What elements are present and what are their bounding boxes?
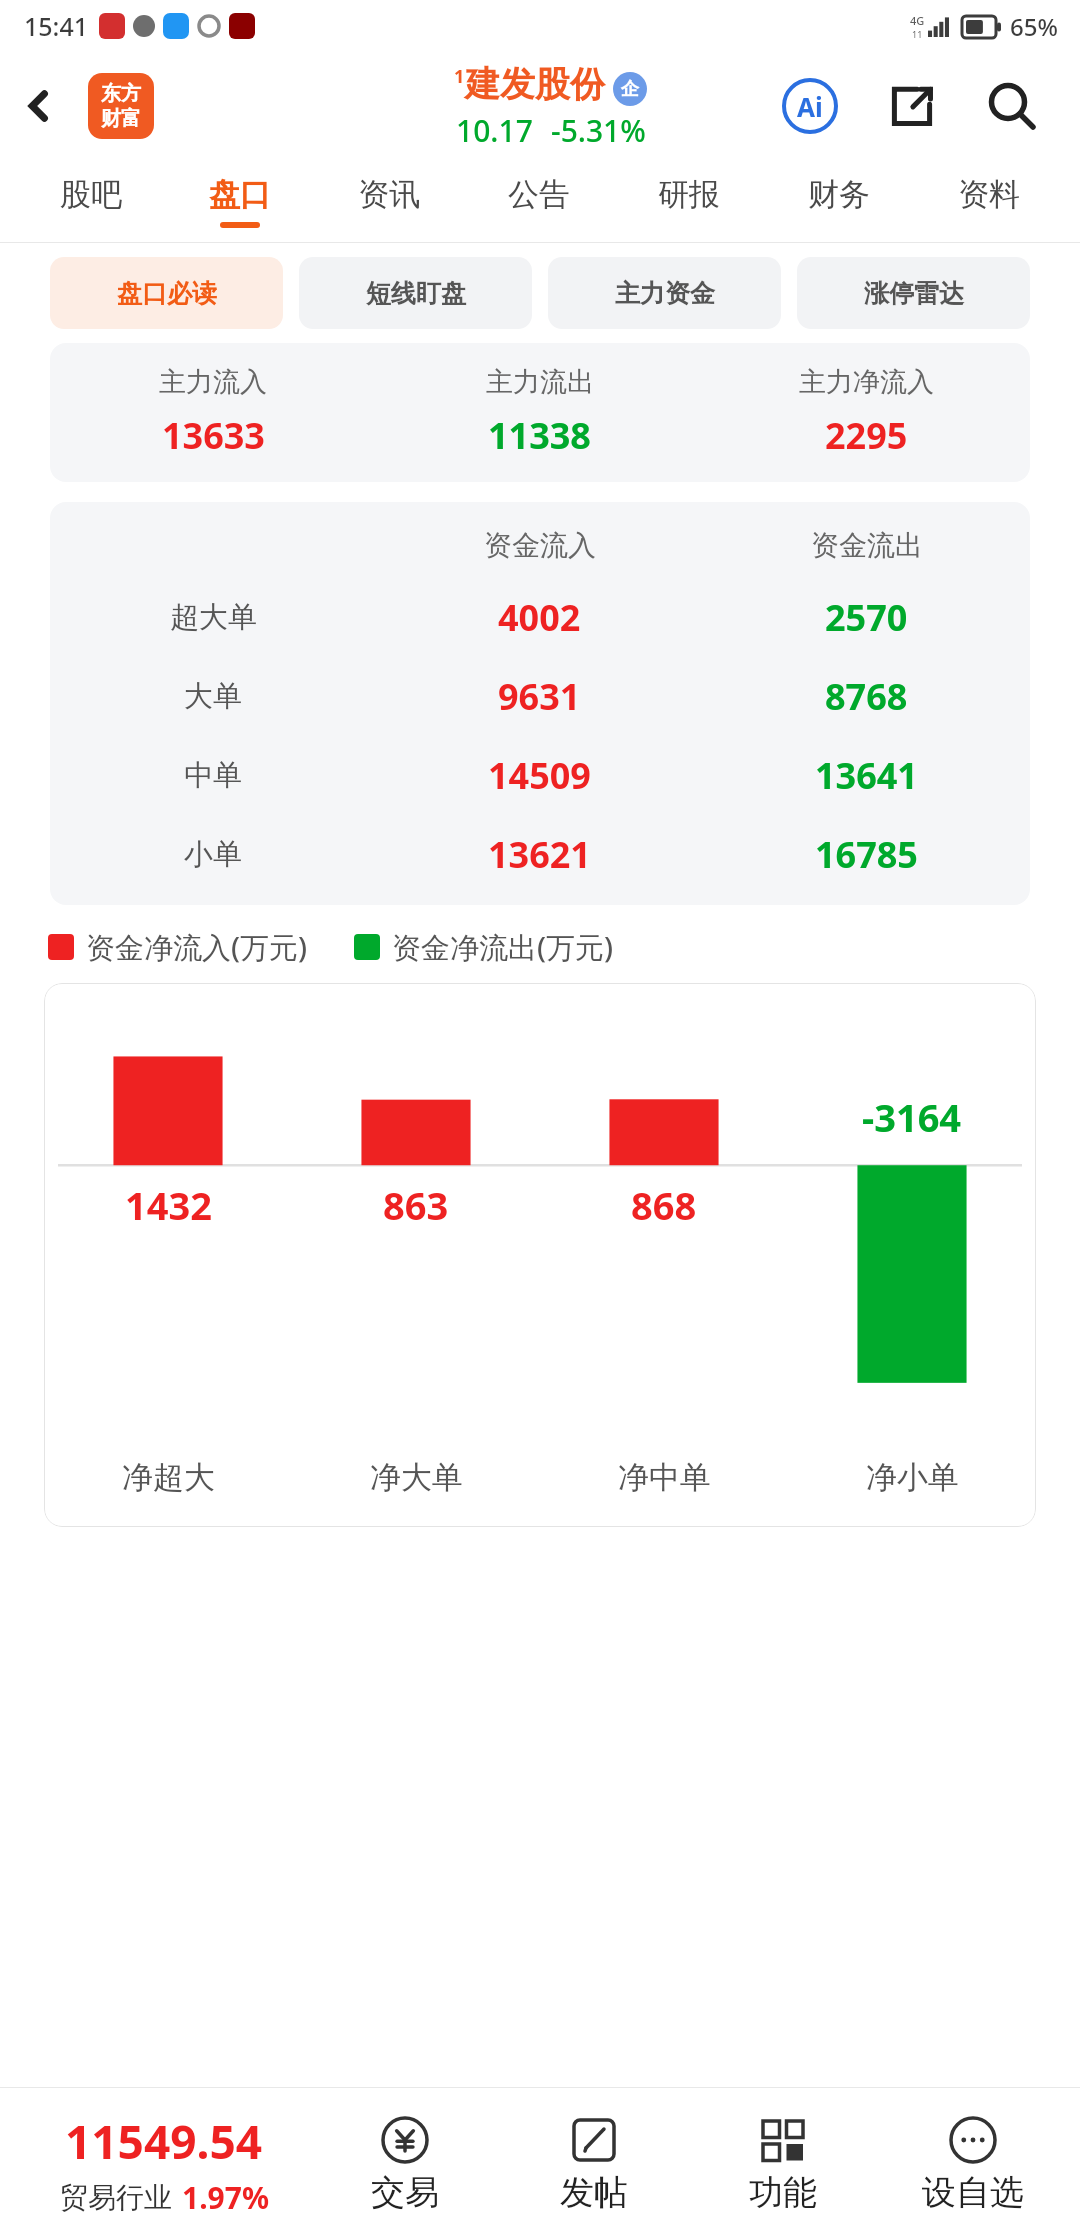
- button[interactable]: 资料: [914, 160, 1064, 242]
- staticText: 贸易行业: [60, 2180, 172, 2215]
- button[interactable]: 主力资金: [548, 257, 781, 329]
- button[interactable]: 设自选: [878, 2088, 1068, 2240]
- staticText: -3164: [862, 1091, 962, 1143]
- button[interactable]: 公告: [464, 160, 614, 242]
- staticText: 净超大: [122, 1458, 215, 1497]
- staticText: 股吧: [60, 175, 122, 214]
- button[interactable]: 大单: [50, 672, 1030, 721]
- staticText: 短线盯盘: [366, 278, 466, 309]
- staticText: 小单: [184, 836, 242, 873]
- staticText: 财务: [808, 175, 870, 214]
- staticText: 公告: [508, 175, 570, 214]
- staticText: 功能: [749, 2171, 817, 2214]
- staticText: 资金流入: [484, 528, 596, 563]
- staticText: 1432: [125, 1179, 212, 1231]
- staticText: 10.17: [456, 110, 533, 151]
- staticText: 863: [383, 1179, 449, 1231]
- staticText: 研报: [658, 175, 720, 214]
- staticText: 涨停雷达: [864, 278, 964, 309]
- button[interactable]: Search: [976, 70, 1048, 142]
- staticText: 盘口: [209, 175, 271, 214]
- staticText: 1: [454, 64, 465, 89]
- staticText: 13641: [815, 751, 918, 800]
- button[interactable]: 东方财富: [88, 73, 154, 139]
- staticText: 建发股份: [465, 62, 605, 106]
- staticText: 中单: [184, 757, 242, 794]
- button[interactable]: 小单: [50, 830, 1030, 879]
- staticText: 8768: [825, 672, 908, 721]
- button[interactable]: 发帖: [499, 2088, 688, 2240]
- staticText: 主力流出: [486, 365, 594, 399]
- staticText: 4G: [910, 13, 925, 28]
- staticText: 发帖: [560, 2171, 628, 2214]
- staticText: -5.31%: [551, 110, 646, 151]
- staticText: 大单: [184, 678, 242, 715]
- button[interactable]: 盘口: [165, 160, 314, 242]
- staticText: 15:41: [24, 9, 89, 43]
- staticText: 净小单: [866, 1458, 959, 1497]
- staticText: 交易: [371, 2171, 439, 2214]
- button[interactable]: Back: [0, 52, 78, 160]
- button[interactable]: Share: [882, 76, 942, 136]
- button[interactable]: 财务: [764, 160, 914, 242]
- staticText: 4002: [498, 593, 581, 642]
- staticText: 净中单: [618, 1458, 711, 1497]
- staticText: 14509: [488, 751, 591, 800]
- button[interactable]: 短线盯盘: [299, 257, 532, 329]
- staticText: 16785: [815, 830, 918, 879]
- staticText: 资金净流出(万元): [392, 927, 614, 967]
- staticText: 资料: [958, 175, 1020, 214]
- button[interactable]: 中单: [50, 751, 1030, 800]
- staticText: 868: [631, 1179, 697, 1231]
- staticText: 2570: [825, 593, 908, 642]
- staticText: 65%: [1010, 10, 1058, 43]
- button[interactable]: 超大单: [50, 593, 1030, 642]
- staticText: 超大单: [170, 599, 257, 636]
- button[interactable]: 涨停雷达: [797, 257, 1030, 329]
- staticText: Ai: [797, 89, 823, 124]
- staticText: 资金流出: [811, 528, 923, 563]
- button[interactable]: 股吧: [16, 160, 165, 242]
- staticText: 11338: [488, 411, 591, 460]
- button[interactable]: AI: [780, 76, 840, 136]
- staticText: 1.97%: [182, 2177, 269, 2218]
- staticText: 财富: [101, 106, 141, 131]
- staticText: 资金净流入(万元): [86, 927, 308, 967]
- button[interactable]: 11549.54: [18, 2110, 310, 2218]
- staticText: 11549.54: [65, 2110, 263, 2173]
- button[interactable]: 研报: [614, 160, 764, 242]
- button[interactable]: 资讯: [314, 160, 464, 242]
- staticText: 13633: [162, 411, 265, 460]
- staticText: 净大单: [370, 1458, 463, 1497]
- staticText: 13621: [488, 830, 591, 879]
- button[interactable]: 盘口必读: [50, 257, 283, 329]
- staticText: 企: [621, 78, 639, 101]
- button[interactable]: 功能: [688, 2088, 878, 2240]
- staticText: 主力资金: [615, 278, 715, 309]
- button[interactable]: 交易: [310, 2088, 499, 2240]
- staticText: 主力流入: [159, 365, 267, 399]
- staticText: 资讯: [358, 175, 420, 214]
- staticText: 2295: [825, 411, 908, 460]
- staticText: 11: [912, 28, 923, 40]
- staticText: 盘口必读: [117, 278, 217, 309]
- staticText: 主力净流入: [799, 365, 934, 399]
- staticText: 设自选: [922, 2171, 1024, 2214]
- staticText: 东方: [101, 81, 141, 106]
- staticText: 9631: [498, 672, 581, 721]
